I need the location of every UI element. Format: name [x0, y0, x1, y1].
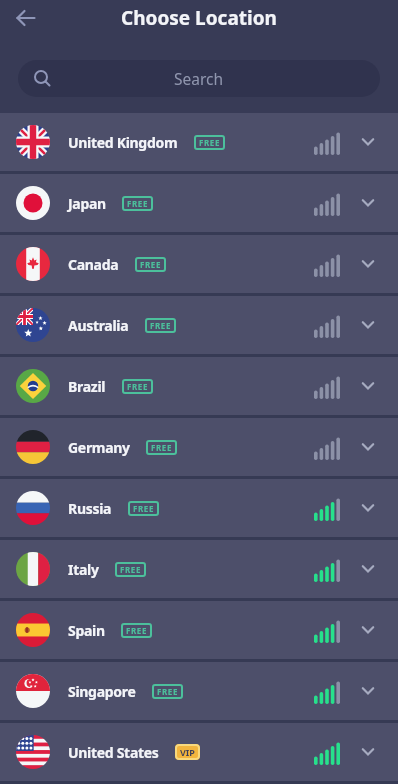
staticText: Spain	[68, 621, 105, 640]
button[interactable]	[8, 0, 44, 36]
staticText: Japan	[68, 194, 106, 213]
staticText: FREE	[127, 198, 148, 209]
button[interactable]: Singapore	[0, 662, 398, 720]
staticText: Canada	[68, 255, 119, 274]
staticText: FREE	[157, 686, 178, 697]
staticText: FREE	[133, 503, 154, 514]
button[interactable]: Canada	[0, 235, 398, 293]
button[interactable]: Search	[18, 60, 380, 97]
button[interactable]: Russia	[0, 479, 398, 537]
button[interactable]: Italy	[0, 540, 398, 598]
staticText: VIP	[180, 746, 195, 758]
staticText: FREE	[199, 137, 220, 148]
staticText: FREE	[127, 381, 148, 392]
button[interactable]: Japan	[0, 174, 398, 232]
button[interactable]: Brazil	[0, 357, 398, 415]
button[interactable]: Spain	[0, 601, 398, 659]
button[interactable]: United Kingdom	[0, 113, 398, 171]
staticText: FREE	[140, 259, 161, 270]
staticText: United States	[68, 743, 159, 762]
staticText: Italy	[68, 560, 99, 579]
staticText: Singapore	[68, 682, 136, 701]
button[interactable]: Germany	[0, 418, 398, 476]
staticText: Australia	[68, 316, 129, 335]
staticText: FREE	[150, 320, 171, 331]
staticText: Brazil	[68, 377, 106, 396]
staticText: Search	[174, 68, 224, 89]
staticText: FREE	[151, 442, 172, 453]
staticText: Choose Location	[121, 5, 277, 31]
button[interactable]: Australia	[0, 296, 398, 354]
staticText: Russia	[68, 499, 112, 518]
staticText: Germany	[68, 438, 130, 457]
staticText: FREE	[120, 564, 141, 575]
button[interactable]: United States	[0, 723, 398, 781]
staticText: United Kingdom	[68, 133, 178, 152]
staticText: FREE	[126, 625, 147, 636]
